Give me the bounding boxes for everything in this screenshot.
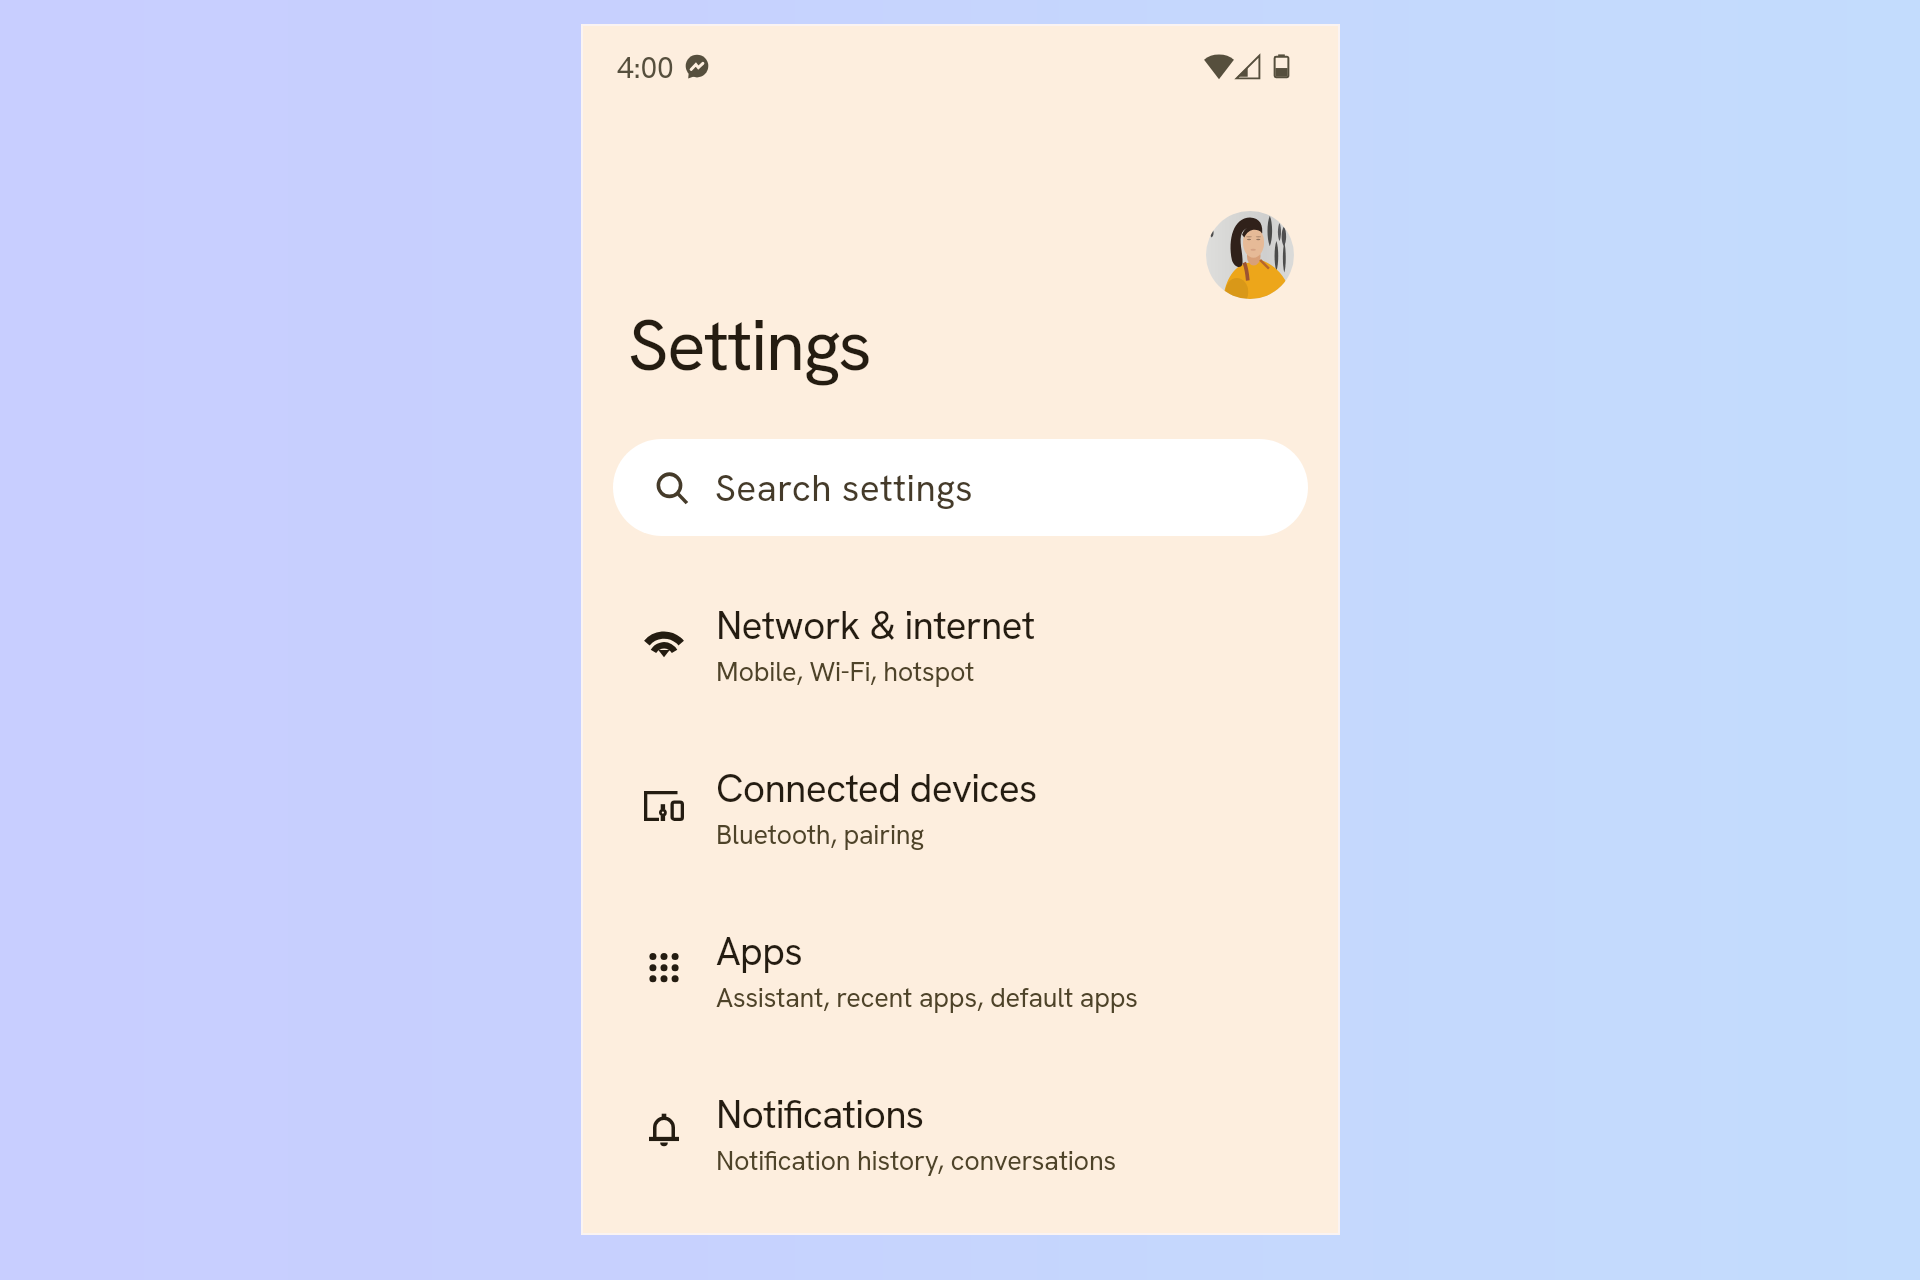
button[interactable]: Account <box>1206 211 1294 299</box>
button[interactable]: Notifications <box>583 1085 1338 1248</box>
staticText: Network & internet <box>716 600 1035 651</box>
staticText: Bluetooth, pairing <box>716 817 924 852</box>
staticText: 4:00 <box>617 48 674 87</box>
staticText: Apps <box>716 926 802 977</box>
button[interactable]: Search settings <box>613 439 1308 536</box>
staticText: Assistant, recent apps, default apps <box>716 980 1138 1015</box>
button[interactable]: Network & internet <box>583 596 1338 759</box>
staticText: Mobile, Wi-Fi, hotspot <box>716 654 975 689</box>
staticText: Notification history, conversations <box>716 1143 1116 1178</box>
button[interactable]: Apps <box>583 922 1338 1085</box>
staticText: Search settings <box>715 464 974 512</box>
staticText: Connected devices <box>716 763 1037 814</box>
staticText: Settings <box>628 298 871 392</box>
staticText: Notifications <box>716 1089 924 1140</box>
button[interactable]: Connected devices <box>583 759 1338 922</box>
